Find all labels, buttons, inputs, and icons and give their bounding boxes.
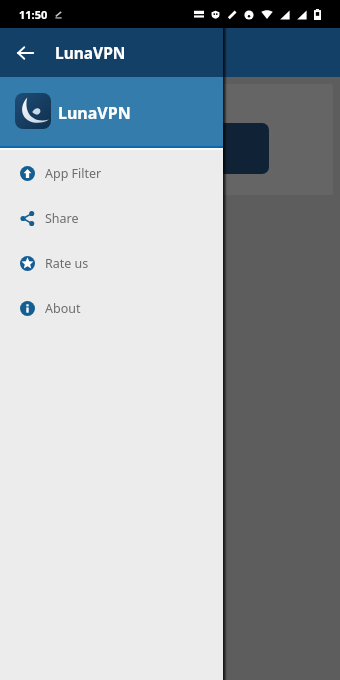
staticText: About xyxy=(45,300,81,317)
staticText: LunaVPN xyxy=(58,102,131,124)
staticText: App Filter xyxy=(45,165,102,182)
button[interactable]: Back xyxy=(11,39,38,66)
staticText: Share xyxy=(45,210,79,227)
staticText: Rate us xyxy=(45,255,89,272)
button[interactable]: App Filter xyxy=(0,151,223,196)
staticText: LunaVPN xyxy=(55,42,126,63)
button[interactable]: Rate us xyxy=(0,241,223,286)
staticText: 11:50 xyxy=(19,7,48,22)
button[interactable]: About xyxy=(0,286,223,331)
button[interactable]: Share xyxy=(0,196,223,241)
